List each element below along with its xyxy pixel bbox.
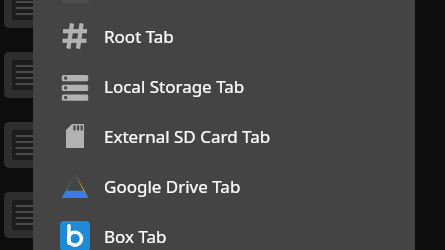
button[interactable]: External SD Card Tab	[33, 111, 415, 161]
button[interactable]: Local Storage Tab	[33, 61, 415, 111]
staticText: Box Tab	[104, 225, 167, 248]
other: Google Drive Tab	[60, 171, 90, 201]
other: Local Storage Tab	[60, 71, 90, 101]
staticText: Root Tab	[104, 25, 174, 48]
other: Box Tab	[60, 221, 90, 250]
button[interactable]: Box Tab	[33, 211, 415, 250]
button[interactable]: Google Drive Tab	[33, 161, 415, 211]
button[interactable]: Root Tab	[33, 11, 415, 61]
staticText: Local Storage Tab	[104, 75, 245, 98]
other: External SD Card Tab	[60, 121, 90, 151]
other: Root Tab	[60, 21, 90, 51]
staticText: External SD Card Tab	[104, 125, 271, 148]
staticText: Google Drive Tab	[104, 175, 241, 198]
